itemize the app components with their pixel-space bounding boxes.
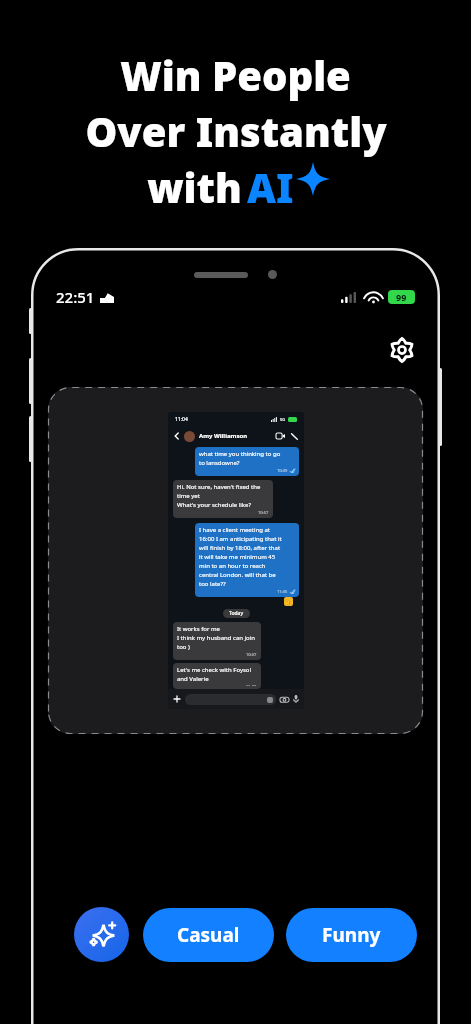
button[interactable]: Let's me check with Foysol — [173, 663, 261, 689]
button[interactable]: I have a client meeting at — [195, 523, 299, 597]
staticText: 99 — [396, 291, 407, 303]
staticText: I think my husband can join — [177, 634, 255, 642]
staticText: Let's me check with Foysol — [177, 666, 252, 674]
staticText: 10:07 — [246, 652, 257, 657]
staticText: Today — [229, 610, 244, 617]
staticText: Over Instantly — [85, 104, 387, 158]
staticText: 5G — [280, 417, 286, 422]
staticText: 10:39 — [277, 468, 288, 473]
staticText: it will take me minimum 45 — [199, 553, 276, 561]
staticText: Amy Williamson — [199, 432, 248, 440]
staticText: Win People — [120, 48, 351, 102]
staticText: AI — [247, 160, 294, 214]
button[interactable]: Casual — [143, 908, 274, 962]
staticText: 10:57 — [258, 510, 269, 515]
staticText: I have a client meeting at — [199, 526, 270, 534]
staticText: and Valerie — [177, 675, 209, 683]
button[interactable]: Settings — [385, 333, 419, 367]
staticText: 👍 — [285, 598, 293, 605]
button[interactable]: AI rewrite — [74, 907, 129, 962]
staticText: will finish by 18:00, after that — [199, 544, 281, 552]
staticText: what time you thinking to go — [199, 450, 281, 458]
staticText: It works for me — [177, 625, 220, 633]
button[interactable]: It works for me — [173, 622, 261, 660]
button[interactable]: what time you thinking to go — [195, 447, 299, 476]
staticText: time yet — [177, 492, 200, 500]
staticText: too ) — [177, 643, 190, 651]
staticText: to lansdowne? — [199, 459, 240, 467]
staticText: 11:04 — [175, 416, 188, 423]
staticText: What's your schedule like? — [177, 501, 252, 509]
staticText: Casual — [177, 922, 240, 948]
staticText: 11:35 — [277, 589, 288, 594]
staticText: too late?? — [199, 580, 226, 588]
staticText: 11:00 — [246, 684, 257, 686]
staticText: 22:51 — [56, 287, 95, 307]
staticText: min to an hour to reach — [199, 562, 266, 570]
staticText: with — [142, 160, 247, 214]
button[interactable]: Hi. Not sure, haven't fixed the — [173, 480, 273, 518]
staticText: Hi. Not sure, haven't fixed the — [177, 483, 261, 491]
staticText: Funny — [322, 922, 381, 948]
button[interactable]: Funny — [286, 908, 417, 962]
staticText: central London. will that be — [199, 571, 276, 579]
staticText: 16:00 I am anticipating that it — [199, 535, 282, 543]
